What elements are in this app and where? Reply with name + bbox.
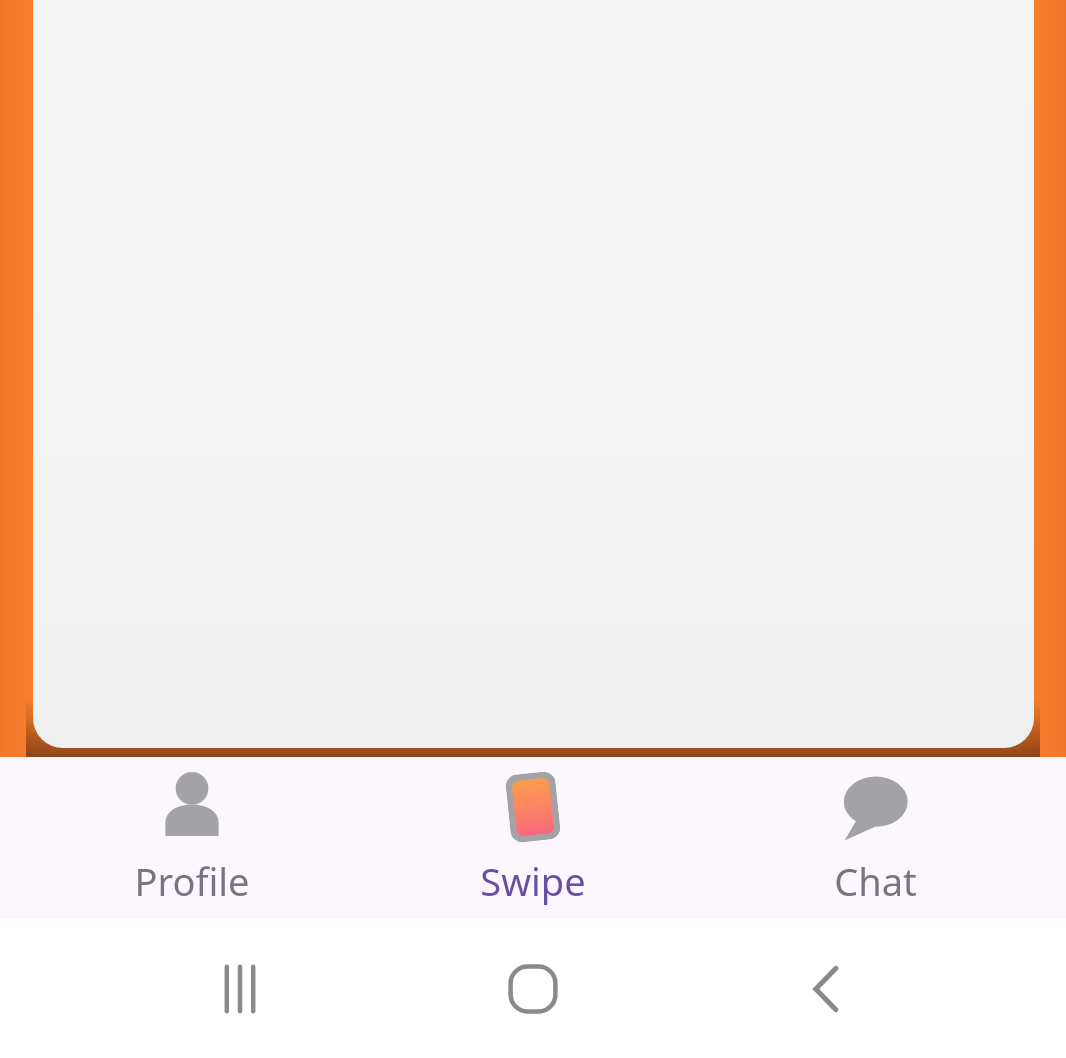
button[interactable]: Profile — [42, 757, 342, 919]
staticText: Swipe — [480, 855, 586, 907]
button[interactable] — [33, 0, 1034, 748]
button[interactable]: Back — [773, 935, 881, 1043]
staticText: Profile — [134, 855, 250, 907]
button[interactable]: Home — [479, 935, 587, 1043]
staticText: Chat — [834, 855, 917, 907]
button[interactable]: Recent apps — [186, 935, 294, 1043]
button[interactable]: Swipe — [383, 757, 683, 919]
button[interactable]: Chat — [725, 757, 1025, 919]
